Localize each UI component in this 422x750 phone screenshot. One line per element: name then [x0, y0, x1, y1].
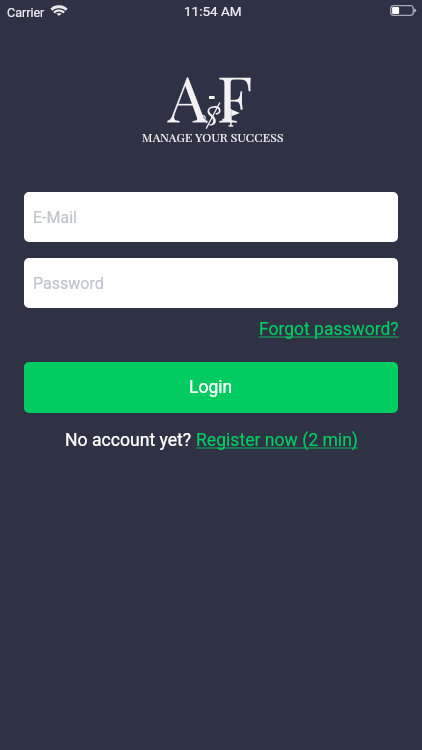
staticText: 11:54 AM: [184, 3, 242, 19]
button[interactable]: Login: [24, 362, 398, 413]
button[interactable]: E-Mail: [24, 192, 398, 242]
staticText: F: [217, 55, 253, 138]
staticText: Login: [189, 377, 233, 398]
staticText: Forgot password?: [259, 319, 399, 340]
button[interactable]: Register now (2 min): [196, 430, 358, 451]
button[interactable]: Password: [24, 258, 398, 308]
staticText: Register now (2 min): [196, 430, 358, 451]
staticText: No account yet?: [65, 430, 196, 451]
staticText: E-Mail: [33, 208, 77, 227]
staticText: Carrier: [7, 5, 45, 20]
staticText: Password: [33, 274, 104, 293]
staticText: A: [168, 55, 208, 138]
staticText: MANAGE YOUR SUCCESS: [142, 129, 284, 145]
button[interactable]: Forgot password?: [259, 319, 399, 340]
other: Wi-Fi signal: [51, 6, 70, 19]
